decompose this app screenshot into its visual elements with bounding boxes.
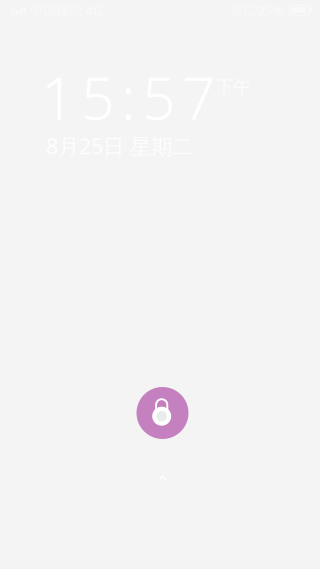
button[interactable]: Unlock xyxy=(136,387,188,439)
